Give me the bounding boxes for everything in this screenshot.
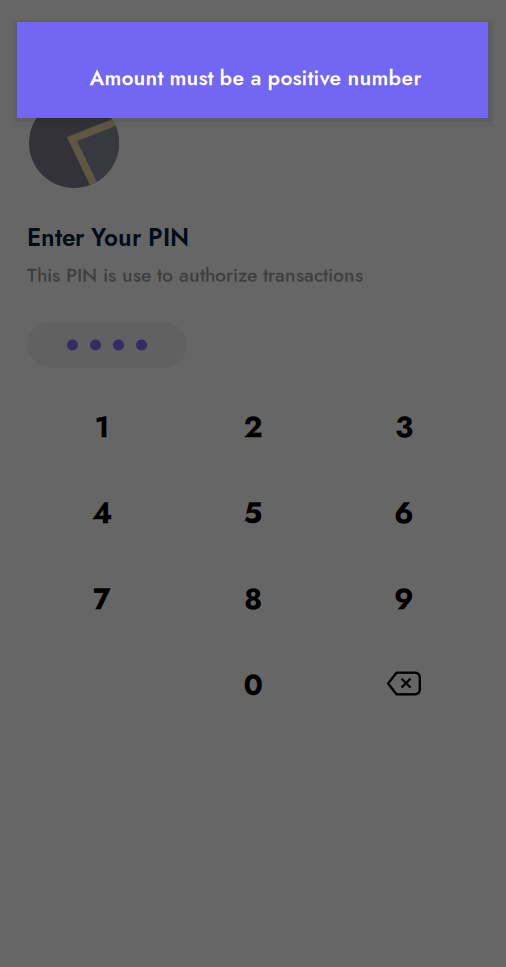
staticText: Amount must be a positive number [89,63,421,93]
staticText: 6 [394,492,414,534]
staticText: Enter Your PIN [27,220,189,255]
button[interactable]: 8 [193,564,313,634]
staticText: 5 [243,492,262,534]
button[interactable]: Delete [344,650,464,720]
button[interactable]: 6 [344,478,464,548]
button[interactable]: 5 [193,478,313,548]
staticText: 1 [94,406,109,448]
button[interactable]: 7 [42,564,162,634]
button[interactable]: 0 [193,650,313,720]
button[interactable]: 3 [344,392,464,462]
button[interactable]: 2 [193,392,313,462]
staticText: 2 [243,406,262,448]
staticText: 3 [395,406,413,448]
staticText: 0 [243,664,262,706]
button[interactable]: 1 [42,392,162,462]
button[interactable]: 9 [344,564,464,634]
staticText: 9 [394,578,414,620]
staticText: 7 [93,578,111,620]
button[interactable]: 4 [42,478,162,548]
staticText: 8 [244,578,262,620]
staticText: 4 [92,492,112,534]
staticText: This PIN is use to authorize transaction… [27,261,363,289]
